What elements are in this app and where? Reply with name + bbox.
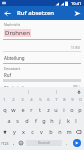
button[interactable]: y — [10, 126, 19, 137]
button[interactable]: 7 — [52, 96, 60, 104]
staticText: k — [67, 117, 70, 124]
staticText: r — [30, 106, 33, 113]
staticText: Drohnen — [5, 29, 30, 37]
staticText: 10:41 — [71, 1, 82, 6]
button[interactable]: 2 — [9, 96, 18, 104]
button[interactable]: Zurück — [0, 6, 14, 20]
staticText: i — [63, 106, 65, 113]
button[interactable]: v — [37, 126, 46, 137]
staticText: 7 — [55, 97, 58, 103]
staticText: v — [40, 128, 43, 135]
staticText: u — [54, 106, 58, 113]
staticText: 1 — [3, 97, 6, 103]
button[interactable]: s — [13, 115, 22, 126]
staticText: p — [78, 106, 82, 113]
button[interactable]: h — [48, 115, 56, 126]
button[interactable]: a — [4, 115, 13, 126]
button[interactable]: i — [60, 104, 68, 115]
button[interactable]: x — [19, 126, 28, 137]
staticText: m — [66, 128, 72, 135]
staticText: n — [58, 128, 62, 135]
staticText: q — [3, 106, 7, 113]
staticText: l — [75, 117, 77, 124]
staticText: Abteilung — [4, 55, 25, 61]
button[interactable]: Umschalten — [0, 126, 10, 137]
staticText: f — [35, 117, 37, 124]
staticText: x — [22, 128, 25, 135]
staticText: 2 — [12, 97, 15, 103]
button[interactable]: z — [44, 104, 52, 115]
staticText: 5 — [39, 97, 42, 103]
button[interactable]: Emoji — [17, 137, 25, 149]
button[interactable]: u — [52, 104, 60, 115]
button[interactable]: d — [22, 115, 31, 126]
staticText: 11/50 — [71, 46, 80, 50]
button[interactable]: . — [63, 137, 70, 149]
button[interactable]: Mikrofon — [76, 89, 82, 95]
staticText: j — [59, 117, 61, 124]
staticText: Ruf absetzen — [17, 9, 55, 17]
staticText: t — [39, 106, 41, 113]
button[interactable]: b — [46, 126, 55, 137]
staticText: Nachricht — [4, 22, 20, 27]
staticText: Deutsch — [38, 141, 51, 145]
staticText: g — [42, 117, 46, 124]
button[interactable]: g — [40, 115, 48, 126]
button[interactable]: Wiederholt — [4, 85, 80, 87]
staticText: 4 — [30, 97, 33, 103]
staticText: , — [13, 140, 15, 147]
button[interactable]: Senden — [70, 6, 84, 20]
staticText: h — [50, 117, 54, 124]
button[interactable]: m — [64, 126, 73, 137]
staticText: ?123 — [1, 141, 9, 146]
staticText: e — [21, 106, 25, 113]
button[interactable]: 1 — [0, 96, 9, 104]
staticText: Wiederholt — [4, 85, 25, 87]
button[interactable]: 9 — [68, 96, 76, 104]
button[interactable]: 4 — [27, 96, 36, 104]
staticText: o — [70, 106, 74, 113]
button[interactable]: f — [31, 115, 40, 126]
button[interactable]: o — [68, 104, 76, 115]
staticText: b — [49, 128, 53, 135]
staticText: Einsatzart — [4, 66, 21, 71]
staticText: w — [11, 106, 16, 113]
staticText: 0 — [79, 97, 82, 103]
button[interactable]: 8 — [60, 96, 68, 104]
button[interactable]: r — [27, 104, 36, 115]
staticText: Ruf — [4, 72, 12, 78]
button[interactable]: Löschen — [73, 126, 84, 137]
button[interactable]: 3 — [18, 96, 27, 104]
button[interactable]: j — [56, 115, 64, 126]
button[interactable]: q — [0, 104, 9, 115]
button[interactable]: n — [55, 126, 64, 137]
button[interactable]: Deutsch — [26, 140, 62, 146]
button[interactable]: e — [18, 104, 27, 115]
button[interactable]: p — [76, 104, 84, 115]
button[interactable]: w — [9, 104, 18, 115]
staticText: c — [31, 128, 34, 135]
button[interactable]: 0 — [76, 96, 84, 104]
staticText: 9 — [71, 97, 74, 103]
button[interactable] — [57, 87, 84, 96]
staticText: 3 — [21, 97, 24, 103]
button[interactable]: c — [28, 126, 37, 137]
staticText: y — [13, 128, 16, 135]
staticText: 8 — [63, 97, 66, 103]
staticText: . — [66, 140, 68, 147]
button[interactable]: k — [64, 115, 72, 126]
staticText: z — [47, 106, 50, 113]
button[interactable]: Senden — [70, 137, 84, 149]
staticText: s — [16, 117, 19, 124]
button[interactable]: , — [10, 137, 17, 149]
button[interactable]: 6 — [44, 96, 52, 104]
staticText: 6 — [47, 97, 50, 103]
button[interactable]: 5 — [36, 96, 44, 104]
staticText: a — [7, 117, 11, 124]
button[interactable]: t — [36, 104, 44, 115]
button[interactable]: ?123 — [0, 137, 10, 149]
staticText: d — [25, 117, 29, 124]
button[interactable]: l — [72, 115, 80, 126]
